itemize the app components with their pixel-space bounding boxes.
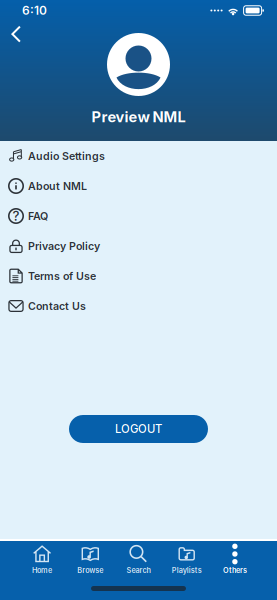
button[interactable]: Terms of Use bbox=[0, 261, 277, 291]
staticText: Others bbox=[223, 566, 247, 575]
staticText: Preview NML bbox=[91, 108, 185, 126]
staticText: Search bbox=[126, 566, 150, 575]
button[interactable]: Others bbox=[211, 544, 259, 575]
staticText: 6:10 bbox=[22, 3, 47, 18]
staticText: FAQ bbox=[28, 209, 48, 222]
button[interactable]: Audio Settings bbox=[0, 141, 277, 171]
button[interactable]: About NML bbox=[0, 171, 277, 201]
button[interactable]: Home bbox=[18, 544, 66, 575]
button[interactable]: Browse bbox=[66, 544, 114, 575]
staticText: Privacy Policy bbox=[28, 239, 100, 252]
button[interactable]: ? bbox=[0, 201, 277, 231]
staticText: LOGOUT bbox=[115, 422, 162, 436]
staticText: Terms of Use bbox=[28, 269, 96, 282]
button[interactable]: LOGOUT bbox=[69, 415, 208, 443]
button[interactable]: Playlists bbox=[163, 544, 211, 575]
staticText: Contact Us bbox=[28, 299, 86, 312]
button[interactable]: Search bbox=[114, 544, 163, 575]
staticText: Audio Settings bbox=[28, 149, 105, 162]
staticText: Browse bbox=[77, 566, 103, 575]
button[interactable]: Back bbox=[0, 21, 32, 47]
staticText: Playlists bbox=[172, 566, 202, 575]
button[interactable]: Privacy Policy bbox=[0, 231, 277, 261]
button[interactable]: Contact Us bbox=[0, 291, 277, 321]
staticText: ? bbox=[12, 208, 19, 224]
staticText: About NML bbox=[28, 179, 87, 192]
staticText: Home bbox=[32, 566, 52, 575]
